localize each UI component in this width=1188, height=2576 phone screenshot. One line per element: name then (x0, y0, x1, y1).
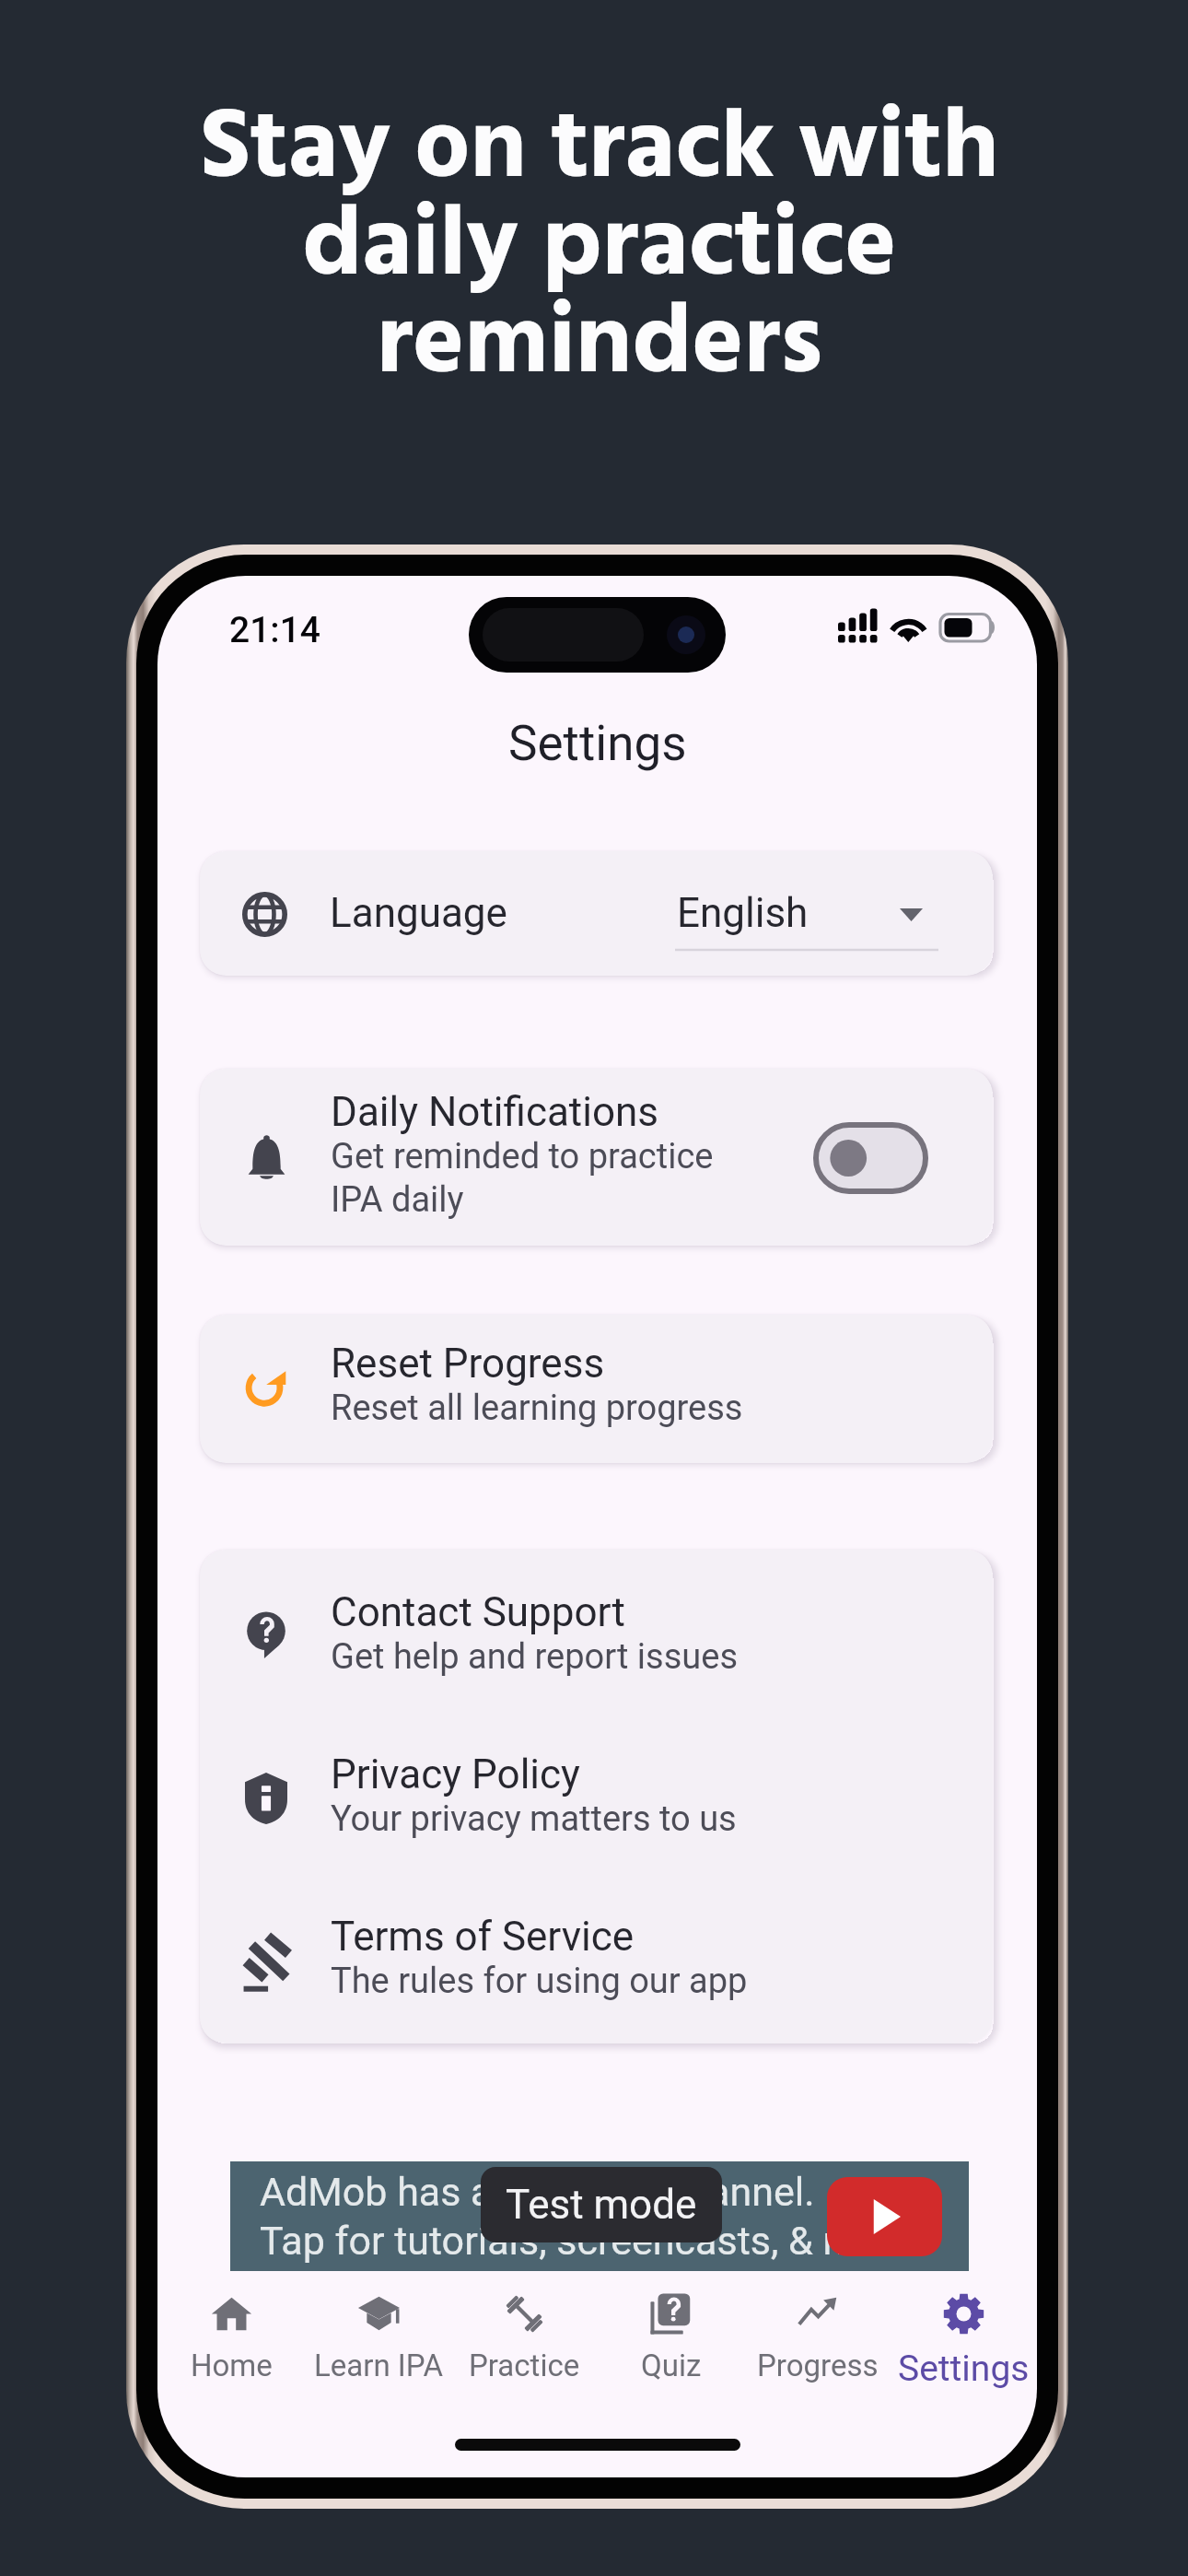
button[interactable]: Daily Notifications (200, 1069, 993, 1246)
staticText: Home (191, 2348, 273, 2383)
staticText: Quiz (641, 2348, 702, 2383)
button[interactable]: Learn IPA (305, 2292, 451, 2403)
staticText: Reset Progress (331, 1340, 605, 1388)
staticText: 21:14 (229, 609, 321, 651)
staticText: Test mode (506, 2181, 697, 2229)
staticText: Stay on track with daily practice remind… (175, 73, 1024, 425)
other: YouTube (827, 2177, 942, 2256)
staticText: Privacy Policy (331, 1751, 580, 1798)
button[interactable]: Privacy Policy (200, 1751, 993, 1913)
staticText: Learn IPA (314, 2348, 443, 2383)
button[interactable]: Language (200, 851, 993, 976)
button[interactable]: Home (157, 2292, 305, 2403)
button[interactable]: Contact Support (200, 1588, 993, 1751)
staticText: Contact Support (331, 1588, 625, 1636)
staticText: Settings (508, 715, 687, 772)
button[interactable]: Terms of Service (200, 1913, 993, 2043)
staticText: English (677, 889, 809, 937)
staticText: Language (330, 889, 507, 937)
staticText: The rules for using our app (331, 1961, 748, 2002)
button[interactable]: Progress (744, 2292, 891, 2403)
button[interactable]: Settings (891, 2292, 1037, 2403)
staticText: Terms of Service (331, 1913, 635, 1961)
staticText: AdMob has a YouTube channel. (260, 2169, 815, 2215)
button[interactable]: Practice (451, 2292, 598, 2403)
staticText: Your privacy matters to us (331, 1798, 737, 1840)
button[interactable]: Daily notifications toggle (813, 1122, 928, 1194)
staticText: Reset all learning progress (331, 1388, 743, 1429)
staticText: Settings (898, 2348, 1030, 2390)
button[interactable]: Reset Progress (200, 1315, 993, 1463)
button[interactable]: Quiz (598, 2292, 744, 2403)
staticText: Daily Notifications (331, 1088, 659, 1136)
staticText: Progress (757, 2348, 879, 2383)
staticText: Get help and report issues (331, 1636, 739, 1678)
staticText: Tap for tutorials, screencasts, & more. (260, 2218, 925, 2264)
button[interactable]: Contact Support (200, 1550, 993, 2043)
button[interactable]: AdMob has a YouTube channel. (230, 2161, 969, 2271)
staticText: Get reminded to practice IPA daily (331, 1136, 722, 1220)
staticText: Practice (469, 2348, 580, 2383)
